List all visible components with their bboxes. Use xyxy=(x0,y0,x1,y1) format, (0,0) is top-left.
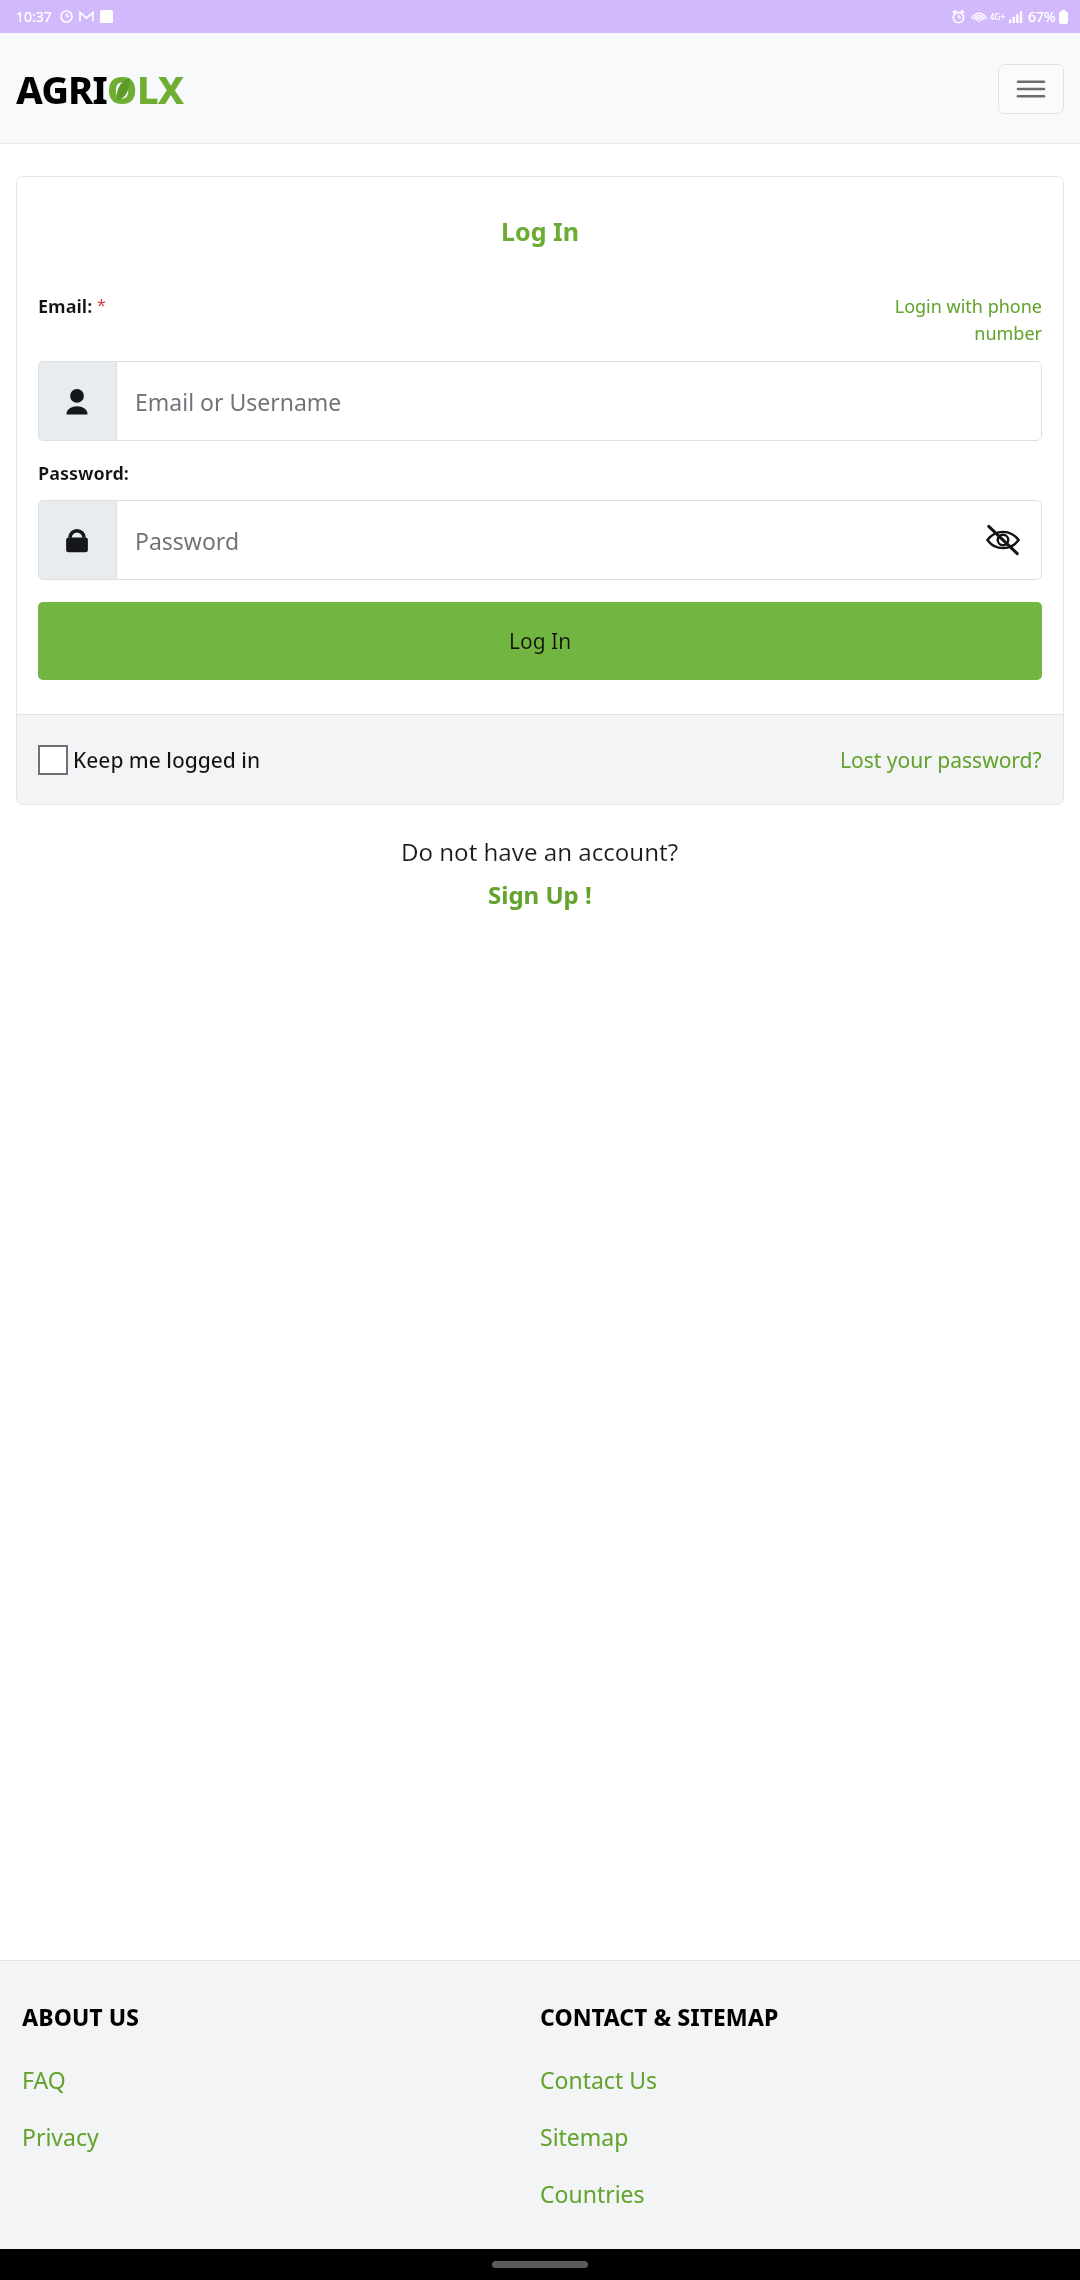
staticText: Log In xyxy=(509,627,572,656)
button[interactable]: Open menu xyxy=(998,64,1064,114)
staticText: Lost your password? xyxy=(840,746,1042,775)
staticText: Sign Up ! xyxy=(488,878,592,911)
button[interactable]: Login with phone number xyxy=(832,294,1042,345)
staticText: Countries xyxy=(540,2178,645,2209)
button[interactable]: Sitemap xyxy=(540,2121,629,2152)
staticText: Login with phone number xyxy=(832,294,1042,345)
staticText: ABOUT US xyxy=(22,2001,140,2032)
button[interactable]: Countries xyxy=(540,2178,645,2209)
button[interactable]: Email or Username xyxy=(38,361,1042,441)
staticText: 4G+ xyxy=(990,11,1005,22)
staticText: 67% xyxy=(1028,7,1056,26)
button[interactable]: Log In xyxy=(38,602,1042,680)
staticText: O xyxy=(107,63,137,115)
staticText: 10:37 xyxy=(16,7,52,26)
staticText: Email or Username xyxy=(135,386,1042,417)
button[interactable]: Sign Up ! xyxy=(488,878,592,911)
staticText: Keep me logged in xyxy=(73,746,261,775)
staticText: * xyxy=(97,294,106,316)
staticText: FAQ xyxy=(22,2064,66,2095)
staticText: Privacy xyxy=(22,2121,99,2152)
button[interactable]: Show password xyxy=(972,509,1034,571)
staticText: AGRI xyxy=(16,63,107,115)
staticText: Password xyxy=(135,525,972,556)
button[interactable]: Privacy xyxy=(22,2121,99,2152)
button[interactable]: FAQ xyxy=(22,2064,66,2095)
button[interactable]: Lost your password? xyxy=(840,746,1042,775)
button[interactable]: AGRI xyxy=(16,63,184,115)
staticText: Do not have an account? xyxy=(401,835,679,868)
staticText: Email: xyxy=(38,294,93,319)
staticText: Password: xyxy=(38,461,129,486)
button[interactable]: Password xyxy=(38,500,1042,580)
button[interactable]: Keep me logged in xyxy=(38,745,840,775)
staticText: Sitemap xyxy=(540,2121,629,2152)
button[interactable]: Contact Us xyxy=(540,2064,658,2095)
staticText: CONTACT & SITEMAP xyxy=(540,2001,779,2032)
staticText: LX xyxy=(137,63,184,115)
staticText: Log In xyxy=(16,214,1064,248)
staticText: Contact Us xyxy=(540,2064,658,2095)
